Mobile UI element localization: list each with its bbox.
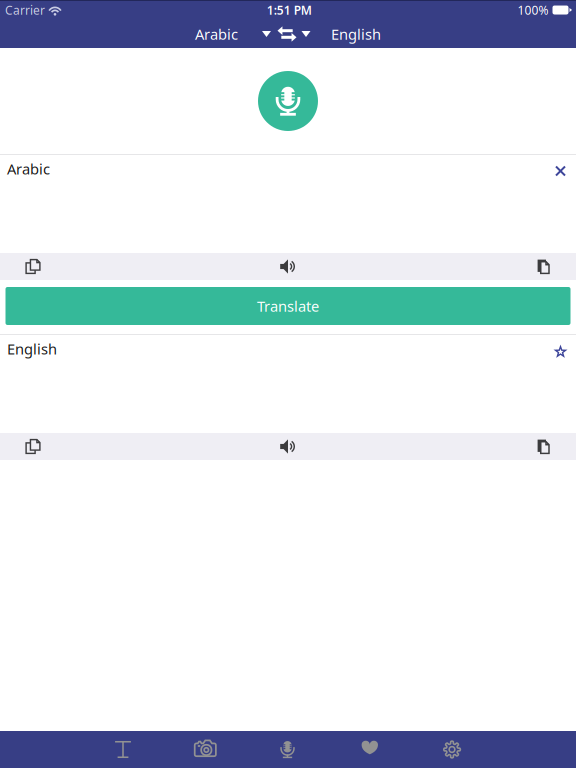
button[interactable]: Copy: [0, 433, 66, 460]
staticText: Arabic: [7, 159, 50, 178]
button[interactable]: Copy: [0, 253, 66, 280]
staticText: Carrier: [5, 2, 45, 18]
button[interactable]: English: [290, 21, 386, 47]
button[interactable]: Record: [258, 71, 318, 131]
staticText: 1:51 PM: [267, 2, 312, 18]
button[interactable]: Clear: [546, 157, 574, 185]
button[interactable]: Settings: [411, 731, 493, 768]
button[interactable]: Camera: [164, 731, 246, 768]
button[interactable]: Voice: [246, 731, 328, 768]
button[interactable]: Speak: [255, 253, 321, 280]
button[interactable]: Swap languages: [273, 21, 301, 47]
staticText: Arabic: [195, 24, 238, 44]
button[interactable]: Text: [82, 731, 164, 768]
button[interactable]: Favorite: [546, 338, 574, 366]
staticText: Translate: [257, 296, 319, 316]
button[interactable]: Translate: [5, 287, 570, 325]
button[interactable]: Paste: [510, 253, 576, 280]
button[interactable]: Speak: [255, 433, 321, 460]
staticText: English: [331, 24, 381, 44]
staticText: 100%: [517, 2, 548, 18]
button[interactable]: Arabic: [186, 21, 282, 47]
button[interactable]: Favorites: [329, 729, 411, 766]
staticText: English: [7, 339, 57, 358]
button[interactable]: Paste: [510, 433, 576, 460]
